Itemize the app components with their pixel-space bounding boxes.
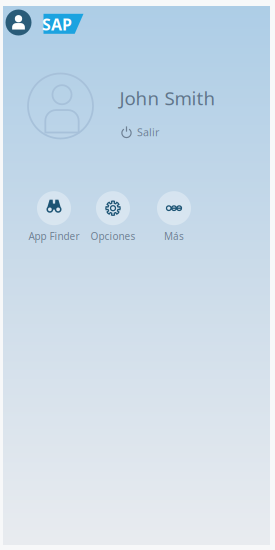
button[interactable]: Salir <box>112 121 168 143</box>
button[interactable]: Opciones <box>83 190 143 244</box>
staticText: Opciones <box>90 229 135 243</box>
button[interactable]: App Finder <box>24 190 84 244</box>
button[interactable]: Más <box>144 190 204 244</box>
staticText: SAP <box>42 13 72 35</box>
staticText: Más <box>164 229 184 243</box>
staticText: John Smith <box>119 85 215 111</box>
staticText: App Finder <box>28 229 79 243</box>
staticText: Salir <box>137 125 159 139</box>
button[interactable]: Account <box>5 9 31 35</box>
